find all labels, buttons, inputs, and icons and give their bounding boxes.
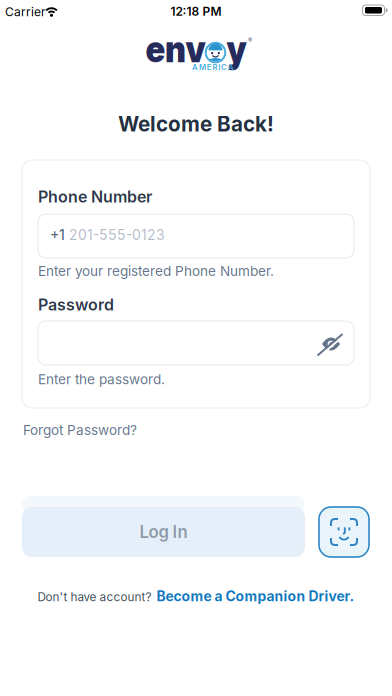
staticText: +1	[50, 226, 65, 243]
staticText: y	[227, 30, 246, 67]
staticText: Enter your registered Phone Number.	[38, 263, 274, 279]
staticText: Password	[38, 295, 114, 314]
button[interactable]: Show password	[317, 330, 345, 358]
staticText: ®	[248, 37, 252, 44]
staticText: Become a Companion Driver.	[156, 588, 354, 604]
staticText: Carrier	[5, 5, 46, 19]
staticText: Log In	[139, 522, 187, 542]
staticText: AMERICA	[192, 62, 234, 72]
button[interactable]: Log in with Face ID	[319, 507, 369, 557]
staticText: Enter the password.	[38, 371, 165, 388]
staticText: env	[148, 30, 204, 67]
button[interactable]: Become a Companion Driver.	[156, 588, 354, 604]
staticText: 201-555-0123	[69, 226, 165, 243]
staticText: Welcome Back!	[118, 112, 274, 137]
staticText: Forgot Password?	[23, 422, 137, 438]
button[interactable]: Forgot Password?	[23, 422, 137, 438]
button[interactable]: Log In	[22, 507, 305, 557]
staticText: 12:18 PM	[170, 4, 221, 18]
staticText: Phone Number	[38, 187, 152, 206]
staticText: Don't have account?	[37, 590, 151, 604]
